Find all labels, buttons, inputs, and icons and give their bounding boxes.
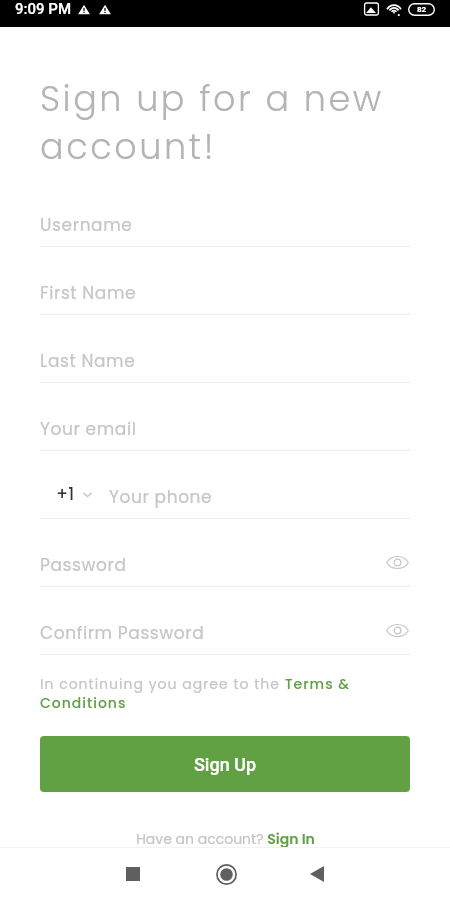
staticText: 82	[417, 5, 427, 14]
button[interactable]: Username	[40, 179, 410, 247]
staticText: Username	[40, 213, 133, 237]
button[interactable]: Your phone	[109, 485, 410, 509]
button[interactable]: Have an account? Sign In	[40, 829, 410, 849]
button[interactable]: Show password	[384, 617, 410, 643]
staticText: Your phone	[109, 485, 213, 509]
button[interactable]: Show password	[384, 549, 410, 575]
button[interactable]: Confirm Password	[40, 587, 410, 655]
staticText: Sign Up	[194, 754, 257, 775]
button[interactable]: Last Name	[40, 315, 410, 383]
staticText: Last Name	[40, 349, 136, 373]
staticText: +1	[56, 482, 75, 506]
staticText: First Name	[40, 281, 137, 305]
staticText: Your email	[40, 417, 137, 441]
button[interactable]: +1	[40, 482, 109, 506]
button[interactable]: Your email	[40, 383, 410, 451]
button[interactable]: Password	[40, 519, 410, 587]
button[interactable]: Recents	[109, 848, 156, 900]
staticText: Sign up for a new account!	[40, 74, 410, 171]
button[interactable]: Sign Up	[40, 736, 410, 792]
staticText: Confirm Password	[40, 621, 205, 645]
staticText: 9:09 PM	[15, 0, 72, 18]
button[interactable]: In continuing you agree to the Terms & C…	[40, 674, 410, 713]
button[interactable]: Back	[293, 848, 340, 900]
button[interactable]: First Name	[40, 247, 410, 315]
button[interactable]: Home	[203, 848, 250, 900]
staticText: Password	[40, 553, 127, 577]
staticText: Have an account? Sign In	[136, 829, 315, 849]
